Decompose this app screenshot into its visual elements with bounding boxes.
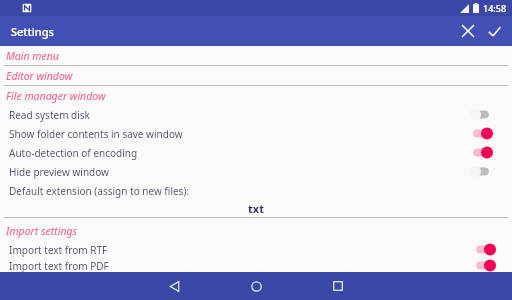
staticText: Auto-detection of encoding bbox=[9, 146, 138, 160]
button[interactable]: Hide preview window bbox=[0, 162, 512, 181]
staticText: Editor window bbox=[6, 69, 73, 83]
button[interactable]: Discard bbox=[455, 18, 481, 44]
button[interactable]: Main menu bbox=[0, 46, 512, 65]
button[interactable]: Default extension (assign to new files): bbox=[0, 181, 512, 200]
staticText: Main menu bbox=[6, 49, 59, 63]
button[interactable]: Save bbox=[481, 18, 507, 44]
staticText: Read system disk bbox=[9, 108, 90, 122]
button[interactable]: Editor window bbox=[0, 66, 512, 85]
staticText: 14:58 bbox=[483, 2, 507, 14]
staticText: Settings bbox=[11, 24, 54, 39]
button[interactable]: Read system disk bbox=[0, 105, 512, 124]
button[interactable]: txt bbox=[0, 200, 512, 217]
button[interactable]: Home bbox=[215, 272, 297, 300]
staticText: Default extension (assign to new files): bbox=[9, 184, 190, 198]
staticText: Import text from PDF bbox=[9, 259, 109, 272]
staticText: txt bbox=[248, 201, 264, 216]
button[interactable]: Auto-detection of encoding bbox=[0, 143, 512, 162]
staticText: Show folder contents in save window bbox=[9, 127, 183, 141]
button[interactable]: Import text from RTF bbox=[0, 240, 512, 259]
staticText: File manager window bbox=[6, 89, 106, 103]
button[interactable]: Recents bbox=[297, 272, 379, 300]
staticText: Import text from RTF bbox=[9, 243, 108, 257]
button[interactable]: Back bbox=[133, 272, 215, 300]
button[interactable]: File manager window bbox=[0, 86, 512, 105]
button[interactable]: Import text from PDF bbox=[0, 259, 512, 272]
button[interactable]: Import settings bbox=[0, 221, 512, 240]
staticText: Import settings bbox=[6, 224, 78, 238]
button[interactable]: Show folder contents in save window bbox=[0, 124, 512, 143]
staticText: Hide preview window bbox=[9, 165, 109, 179]
